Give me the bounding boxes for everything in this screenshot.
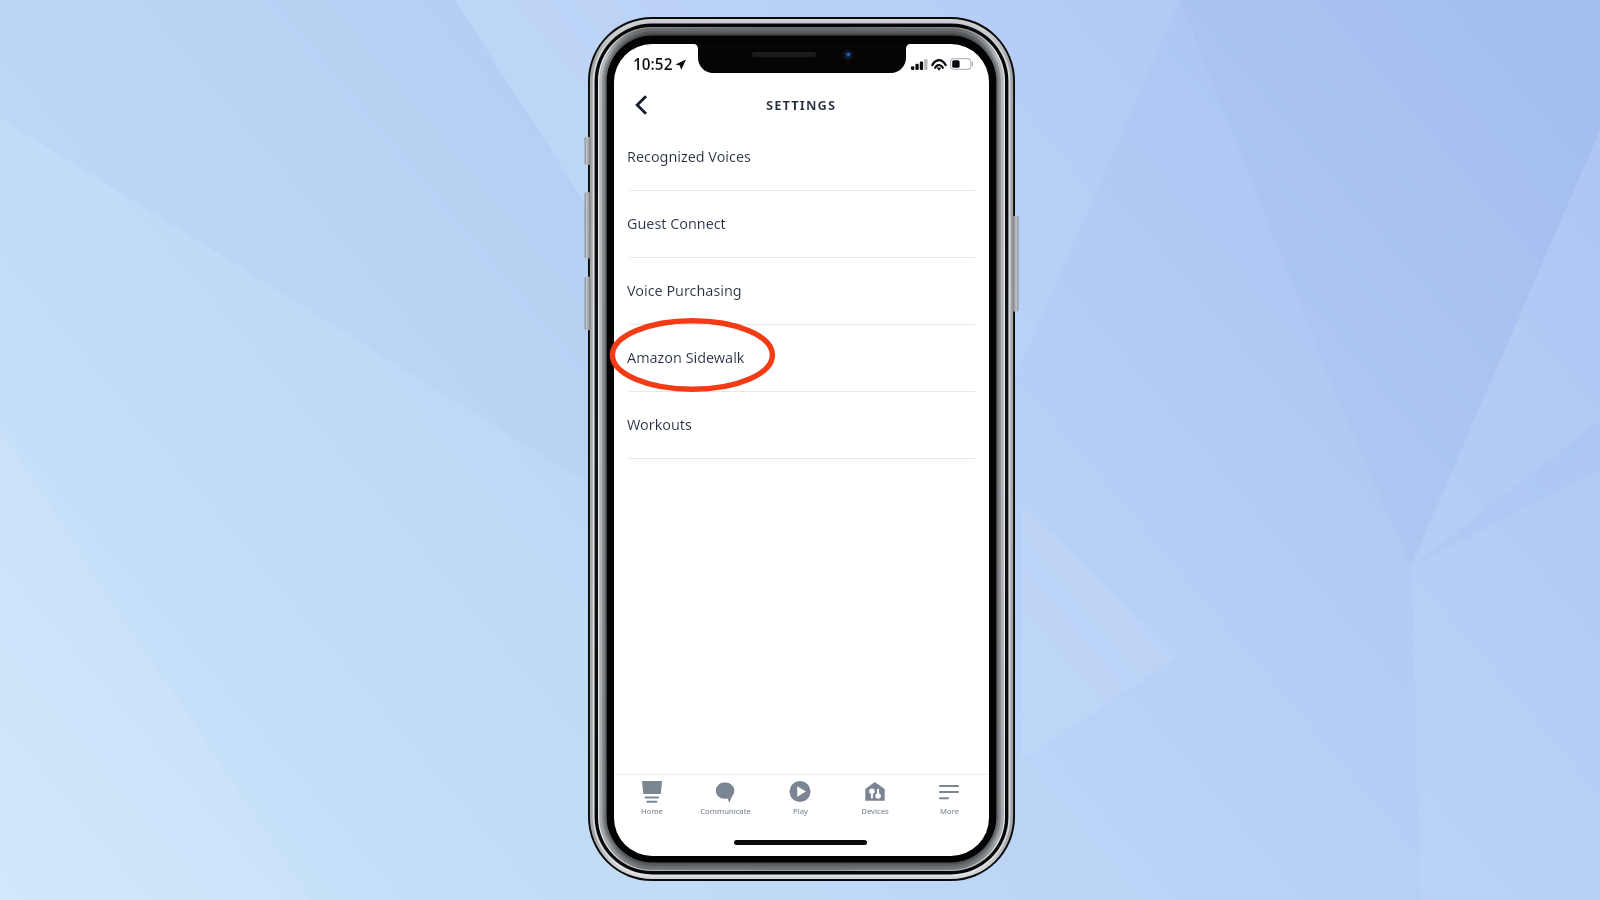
button[interactable]: Communicate <box>688 775 762 816</box>
staticText: Communicate <box>700 806 751 816</box>
button[interactable]: Workouts <box>614 392 989 459</box>
staticText: 10:52 <box>633 54 673 75</box>
staticText: SETTINGS <box>766 96 837 114</box>
staticText: Devices <box>861 806 889 816</box>
staticText: More <box>940 806 959 816</box>
button[interactable]: Amazon Sidewalk <box>614 325 989 392</box>
button[interactable]: Back <box>622 86 660 124</box>
button[interactable]: Guest Connect <box>614 191 989 258</box>
button[interactable]: Voice Purchasing <box>614 258 989 325</box>
button[interactable]: Play <box>763 775 837 816</box>
staticText: Recognized Voices <box>627 147 751 167</box>
button[interactable]: Recognized Voices <box>614 124 989 191</box>
staticText: Play <box>793 806 808 816</box>
button[interactable]: Devices <box>838 775 912 816</box>
staticText: Voice Purchasing <box>627 281 742 301</box>
staticText: Workouts <box>627 415 692 435</box>
button[interactable]: More <box>912 775 986 816</box>
staticText: Guest Connect <box>627 214 726 234</box>
staticText: Home <box>641 806 663 816</box>
staticText: Amazon Sidewalk <box>627 348 745 368</box>
button[interactable]: Home <box>615 775 689 816</box>
